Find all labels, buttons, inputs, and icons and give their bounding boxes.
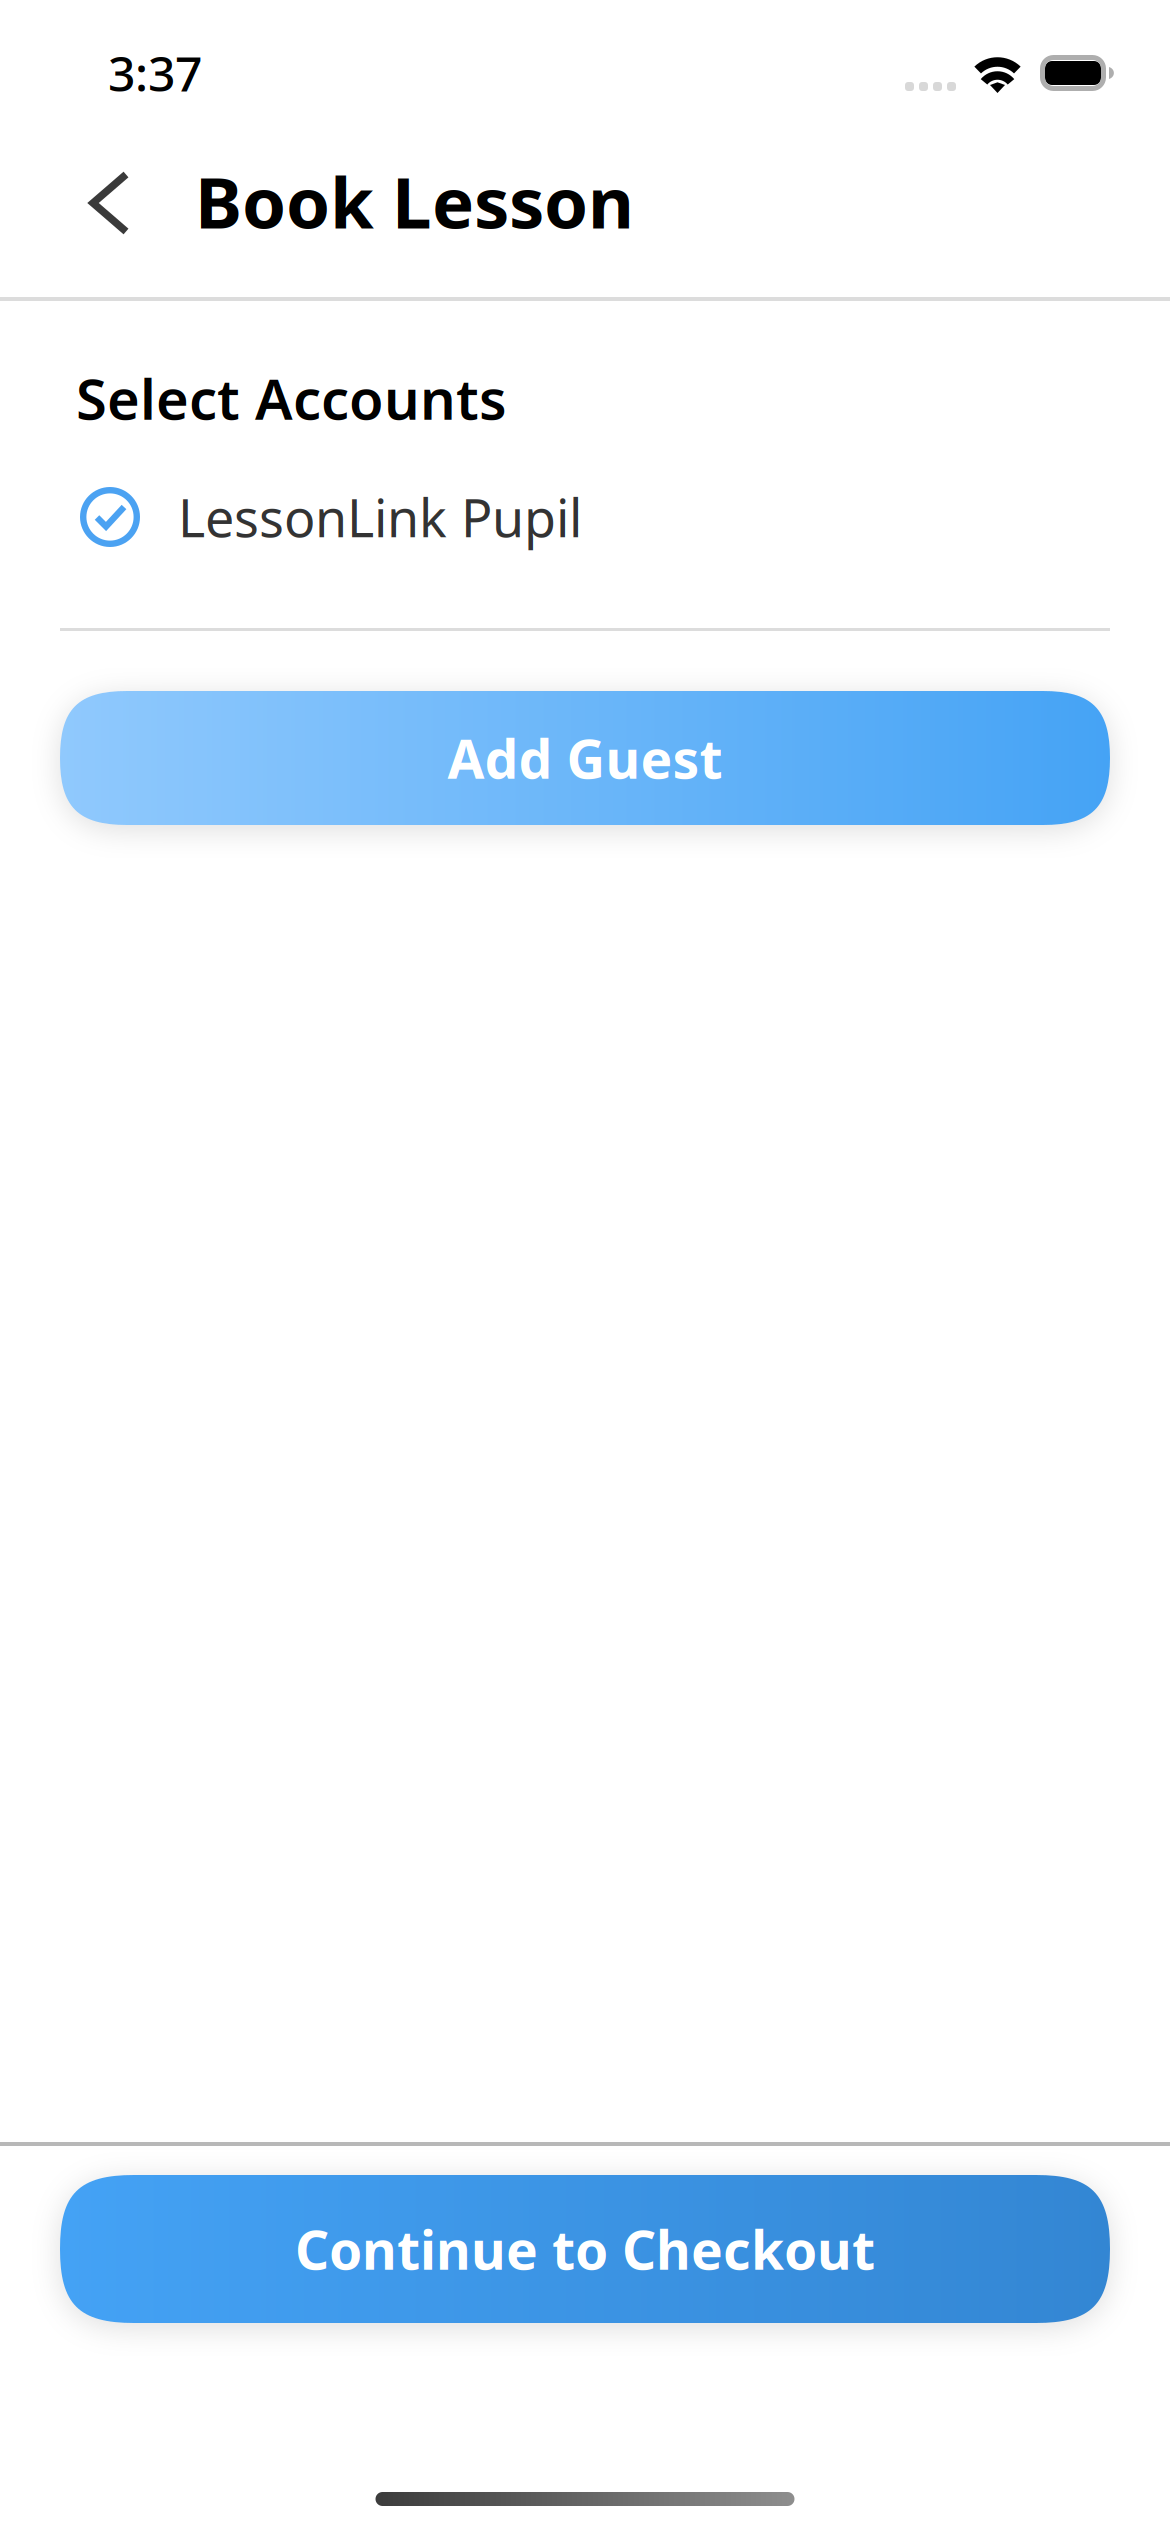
staticText: Select Accounts: [76, 361, 507, 435]
staticText: LessonLink Pupil: [178, 482, 582, 552]
staticText: Book Lesson: [195, 154, 634, 248]
button[interactable]: Continue to Checkout: [60, 2175, 1110, 2323]
button[interactable]: LessonLink Pupil: [0, 436, 1170, 598]
staticText: Continue to Checkout: [295, 2214, 875, 2284]
button[interactable]: Add Guest: [60, 691, 1110, 825]
staticText: Add Guest: [447, 723, 722, 793]
staticText: 3:37: [108, 41, 202, 105]
button[interactable]: Back: [0, 135, 160, 266]
